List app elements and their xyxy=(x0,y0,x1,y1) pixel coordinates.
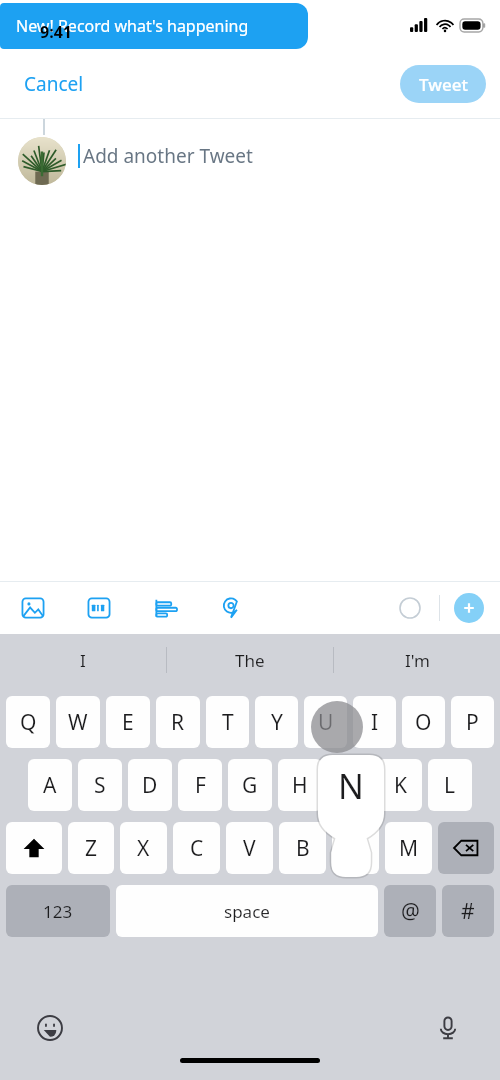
button[interactable]: Add location xyxy=(214,591,248,625)
staticText: Z xyxy=(85,834,98,863)
button[interactable]: Add poll xyxy=(148,591,182,625)
staticText: Cancel xyxy=(24,71,84,97)
button[interactable]: H xyxy=(278,759,322,811)
button[interactable]: U xyxy=(304,696,347,748)
staticText: The xyxy=(235,649,265,672)
button[interactable]: Emoji xyxy=(32,1010,68,1046)
button[interactable]: I xyxy=(353,696,396,748)
staticText: New! Record what's happening xyxy=(16,15,249,37)
button[interactable]: G xyxy=(228,759,272,811)
staticText: A xyxy=(43,771,57,800)
staticText: F xyxy=(195,771,206,800)
staticText: X xyxy=(137,834,150,863)
button[interactable]: Tweet xyxy=(400,65,486,103)
button[interactable]: J xyxy=(328,759,372,811)
staticText: V xyxy=(243,834,256,863)
staticText: N xyxy=(338,763,364,809)
button[interactable]: Y xyxy=(255,696,298,748)
button[interactable]: space xyxy=(116,885,378,937)
button[interactable]: R xyxy=(156,696,200,748)
staticText: I xyxy=(371,708,379,737)
button[interactable]: I'm xyxy=(334,634,500,686)
staticText: 9:41 xyxy=(40,21,72,43)
staticText: L xyxy=(444,771,456,800)
staticText: Q xyxy=(20,708,37,737)
button[interactable]: D xyxy=(128,759,172,811)
staticText: H xyxy=(292,771,308,800)
staticText: # xyxy=(461,897,475,926)
button[interactable]: @ xyxy=(384,885,436,937)
button[interactable]: Cancel xyxy=(12,63,96,105)
staticText: U xyxy=(318,708,334,737)
staticText: O xyxy=(415,708,432,737)
button[interactable]: O xyxy=(402,696,445,748)
button[interactable]: 123 xyxy=(6,885,110,937)
staticText: Tweet xyxy=(419,73,468,96)
button[interactable]: Q xyxy=(6,696,50,748)
button[interactable]: T xyxy=(206,696,249,748)
staticText: E xyxy=(122,708,134,737)
staticText: I'm xyxy=(405,649,430,672)
staticText: K xyxy=(394,771,407,800)
staticText: space xyxy=(224,900,270,923)
button[interactable]: V xyxy=(226,822,273,874)
button[interactable]: B xyxy=(279,822,326,874)
button[interactable]: I xyxy=(0,634,166,686)
staticText: 123 xyxy=(43,900,73,923)
button[interactable]: Shift xyxy=(6,822,62,874)
staticText: I xyxy=(80,649,86,672)
staticText: D xyxy=(142,771,158,800)
staticText: M xyxy=(399,834,419,863)
staticText: P xyxy=(466,708,479,737)
button[interactable]: W xyxy=(56,696,100,748)
button[interactable]: F xyxy=(178,759,222,811)
button[interactable]: K xyxy=(378,759,422,811)
button[interactable]: C xyxy=(173,822,220,874)
button[interactable]: N xyxy=(332,822,379,874)
button[interactable]: Add tweet xyxy=(454,593,484,623)
button[interactable]: X xyxy=(120,822,167,874)
staticText: Add another Tweet xyxy=(83,143,253,169)
button[interactable]: Add photo xyxy=(16,591,50,625)
staticText: G xyxy=(242,771,258,800)
staticText: J xyxy=(347,771,353,800)
staticText: R xyxy=(171,708,185,737)
button[interactable]: Backspace xyxy=(438,822,494,874)
staticText: C xyxy=(190,834,204,863)
button[interactable]: Character count xyxy=(393,591,427,625)
button[interactable]: A xyxy=(28,759,72,811)
button[interactable]: E xyxy=(106,696,150,748)
button[interactable]: L xyxy=(428,759,472,811)
staticText: @ xyxy=(401,897,420,926)
button[interactable]: Z xyxy=(68,822,114,874)
button[interactable]: P xyxy=(451,696,494,748)
button[interactable]: Dictation xyxy=(430,1010,466,1046)
staticText: B xyxy=(296,834,310,863)
button[interactable]: S xyxy=(78,759,122,811)
button[interactable]: M xyxy=(385,822,432,874)
staticText: T xyxy=(222,708,234,737)
staticText: S xyxy=(94,771,106,800)
button[interactable]: Add GIF xyxy=(82,591,116,625)
staticText: Y xyxy=(271,708,283,737)
button[interactable]: The xyxy=(167,634,333,686)
button[interactable]: New! Record what's happening xyxy=(0,3,308,49)
button[interactable]: # xyxy=(442,885,494,937)
staticText: W xyxy=(68,708,88,737)
